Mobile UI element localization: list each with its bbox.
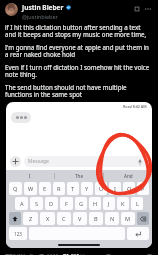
button[interactable]: H <box>89 197 101 210</box>
staticText: R <box>57 185 61 193</box>
button[interactable]: P <box>137 182 149 195</box>
staticText: E <box>43 185 47 193</box>
staticText: N <box>110 215 115 223</box>
staticText: W <box>28 185 34 193</box>
button[interactable]: Y <box>81 182 93 195</box>
button[interactable]: The <box>55 170 103 181</box>
staticText: The <box>75 173 83 179</box>
staticText: Even if I turn off dictation I somehow h… <box>5 63 153 79</box>
button[interactable]: E <box>39 182 51 195</box>
button[interactable]: Q <box>9 182 22 195</box>
staticText: I'm gonna find everyone at apple and put… <box>5 43 153 59</box>
button[interactable]: I <box>6 170 54 181</box>
button[interactable]: F <box>60 197 73 210</box>
button[interactable]: 123 <box>9 227 27 240</box>
button[interactable]: O <box>123 182 135 195</box>
staticText: U <box>99 185 104 193</box>
staticText: Read 8:42 AM <box>123 104 147 109</box>
staticText: Z <box>29 215 33 223</box>
staticText: K <box>121 200 125 208</box>
staticText: G <box>79 200 84 208</box>
button[interactable]: X <box>40 212 55 225</box>
button[interactable]: Screenshot of iMessage keyboard <box>6 102 152 248</box>
staticText: H <box>93 200 98 208</box>
button[interactable]: T <box>67 182 79 195</box>
button[interactable]: I <box>109 182 121 195</box>
button[interactable]: Grok actions <box>131 3 142 14</box>
staticText: Message <box>28 158 49 165</box>
button[interactable]: Shift <box>9 212 21 225</box>
button[interactable]: N <box>105 212 119 225</box>
staticText: X <box>46 215 50 223</box>
button[interactable]: K <box>117 197 129 210</box>
staticText: The send button should not have multiple… <box>5 83 153 99</box>
staticText: O <box>127 185 132 193</box>
button[interactable]: Message <box>24 156 148 167</box>
staticText: I <box>29 173 31 179</box>
button[interactable]: More options <box>142 3 153 14</box>
button[interactable]: M <box>121 212 135 225</box>
staticText: B <box>94 215 98 223</box>
button[interactable]: B <box>89 212 103 225</box>
staticText: A <box>20 200 24 208</box>
button[interactable]: And <box>104 170 152 181</box>
button[interactable]: Dictation <box>136 158 144 166</box>
button[interactable]: Backspace <box>137 212 149 225</box>
button[interactable]: Return <box>127 227 149 240</box>
staticText: C <box>62 215 66 223</box>
button[interactable]: L <box>131 197 143 210</box>
button[interactable]: W <box>24 182 37 195</box>
staticText: Y <box>85 185 89 193</box>
staticText: Views <box>79 252 95 255</box>
button[interactable]: A <box>15 197 28 210</box>
staticText: L <box>136 200 139 208</box>
button[interactable]: C <box>57 212 71 225</box>
button[interactable]: Add attachment <box>10 156 21 167</box>
staticText: S <box>35 200 39 208</box>
button[interactable]: Profile photo <box>5 3 18 16</box>
staticText: Q <box>13 185 18 193</box>
staticText: T <box>71 185 75 193</box>
staticText: And <box>124 173 133 179</box>
button[interactable]: Z <box>23 212 38 225</box>
staticText: Justin Bieber <box>22 3 64 12</box>
staticText: M <box>125 215 131 223</box>
button[interactable]: U <box>95 182 107 195</box>
button[interactable]: D <box>45 197 58 210</box>
staticText: 8:07 PM · Dec 8, 2025 · <box>5 252 63 255</box>
staticText: V <box>78 215 82 223</box>
staticText: @justinbieber <box>22 13 58 20</box>
staticText: I <box>114 185 116 193</box>
button[interactable]: J <box>103 197 115 210</box>
staticText: if I hit this dictation button after sen… <box>5 23 153 39</box>
staticText: F <box>65 200 68 208</box>
staticText: 71.6M <box>63 252 79 255</box>
button[interactable]: G <box>75 197 87 210</box>
button[interactable]: R <box>53 182 65 195</box>
staticText: P <box>141 185 145 193</box>
staticText: D <box>49 200 54 208</box>
staticText: J <box>108 200 110 208</box>
button[interactable]: V <box>73 212 87 225</box>
staticText: 123 <box>14 231 22 237</box>
button[interactable]: S <box>30 197 43 210</box>
